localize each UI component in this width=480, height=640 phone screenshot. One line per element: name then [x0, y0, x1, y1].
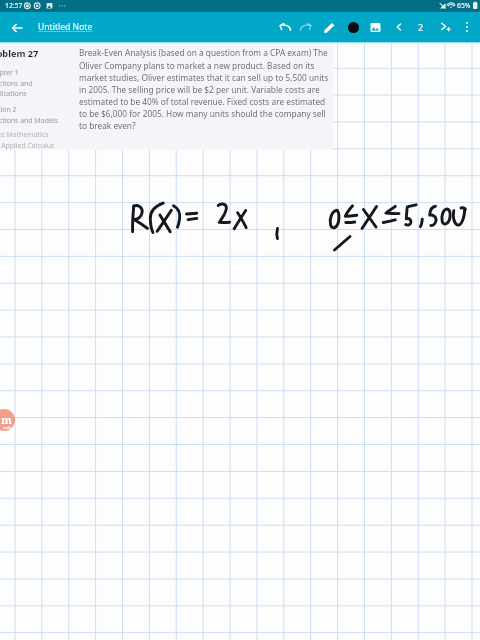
staticText: m	[1, 412, 12, 427]
button[interactable]: Problem 27	[0, 43, 333, 150]
staticText: Break-Even Analysis (based on a question…	[79, 47, 329, 131]
button[interactable]: Add page	[434, 16, 456, 38]
button[interactable]: 2	[410, 16, 432, 38]
staticText: 65%	[457, 1, 471, 10]
staticText: 2	[418, 21, 424, 33]
button[interactable]: Untitled Note	[38, 18, 93, 36]
staticText: Untitled Note	[38, 21, 93, 33]
staticText: Problem 27	[0, 47, 39, 60]
button[interactable]: Previous page	[388, 16, 410, 38]
staticText: 12:57	[5, 1, 23, 10]
button[interactable]: More options	[456, 16, 478, 38]
button[interactable]: Redo	[294, 16, 316, 38]
staticText: Section 2 Functions and Models	[0, 105, 58, 125]
staticText: math	[3, 426, 11, 430]
button[interactable]: Pen colour	[342, 16, 364, 38]
button[interactable]: Pen	[318, 16, 340, 38]
staticText: Chapter 1 Functions and Applications	[0, 68, 33, 98]
button[interactable]: Back	[6, 17, 28, 39]
staticText: Finite Mathematics and Applied Calculus	[0, 130, 55, 150]
button[interactable]: Insert image	[364, 16, 386, 38]
button[interactable]: Undo	[274, 16, 296, 38]
